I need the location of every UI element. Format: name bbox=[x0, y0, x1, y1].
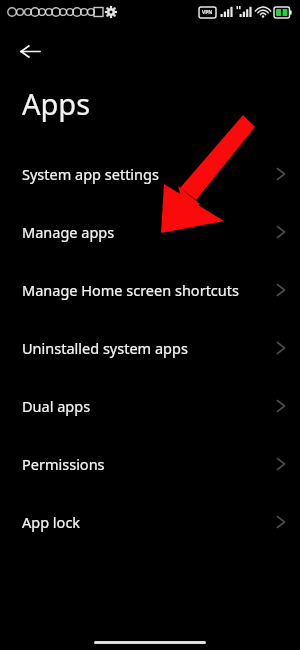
staticText: Uninstalled system apps bbox=[22, 338, 188, 358]
staticText: VPN bbox=[202, 9, 213, 16]
button[interactable]: Permissions bbox=[0, 435, 300, 493]
staticText: Manage apps bbox=[22, 222, 115, 242]
button[interactable]: Dual apps bbox=[0, 377, 300, 435]
staticText: App lock bbox=[22, 512, 81, 532]
staticText: Dual apps bbox=[22, 396, 91, 416]
button[interactable]: App lock bbox=[0, 493, 300, 551]
button[interactable]: Back bbox=[10, 31, 50, 71]
staticText: System app settings bbox=[22, 164, 159, 184]
button[interactable]: Uninstalled system apps bbox=[0, 319, 300, 377]
button[interactable]: Manage apps bbox=[0, 203, 300, 261]
staticText: Manage Home screen shortcuts bbox=[22, 280, 239, 300]
button[interactable]: Manage Home screen shortcuts bbox=[0, 261, 300, 319]
staticText: Apps bbox=[22, 84, 91, 123]
button[interactable]: System app settings bbox=[0, 145, 300, 203]
staticText: Permissions bbox=[22, 454, 105, 474]
